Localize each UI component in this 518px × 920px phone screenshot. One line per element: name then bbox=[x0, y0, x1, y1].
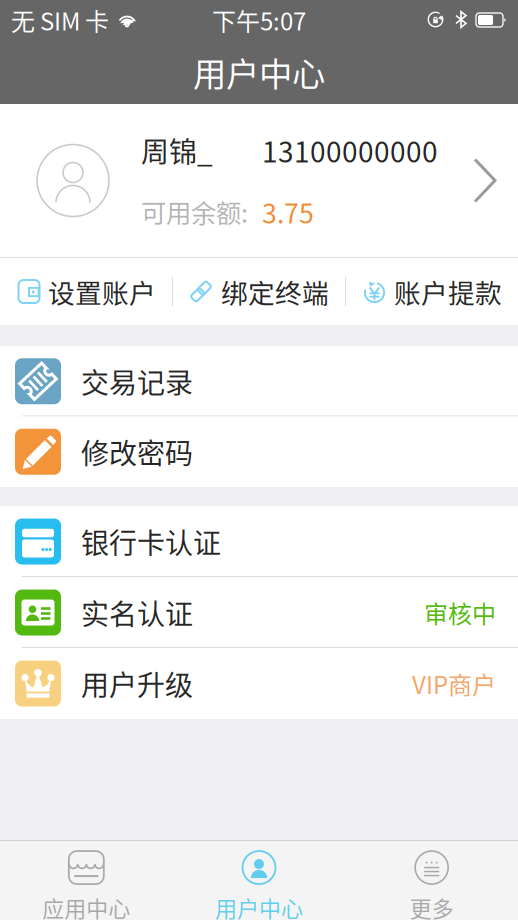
button[interactable]: 账户提款 bbox=[346, 258, 518, 325]
staticText: 设置账户 bbox=[48, 272, 156, 311]
staticText: 实名认证 bbox=[81, 592, 193, 633]
staticText: 交易记录 bbox=[81, 361, 193, 401]
staticText: 用户中心 bbox=[215, 892, 303, 920]
staticText: 无 SIM 卡 bbox=[11, 3, 109, 37]
button[interactable]: 用户中心 bbox=[173, 841, 345, 920]
staticText: 银行卡认证 bbox=[81, 521, 221, 562]
staticText: 修改密码 bbox=[81, 431, 193, 472]
button[interactable]: 绑定终端 bbox=[173, 258, 345, 325]
button[interactable]: 交易记录 bbox=[0, 346, 518, 416]
button[interactable]: 周锦_ bbox=[0, 104, 518, 257]
button[interactable]: 实名认证 bbox=[0, 577, 518, 648]
staticText: 3.75 bbox=[262, 192, 314, 231]
staticText: 用户中心 bbox=[193, 48, 325, 96]
staticText: 用户升级 bbox=[81, 663, 193, 704]
staticText: 可用余额: bbox=[141, 193, 248, 230]
staticText: 下午5:07 bbox=[212, 3, 306, 37]
button[interactable]: 用户升级 bbox=[0, 648, 518, 719]
staticText: 审核中 bbox=[424, 595, 496, 630]
button[interactable]: 设置账户 bbox=[0, 258, 172, 325]
staticText: 绑定终端 bbox=[221, 272, 329, 311]
staticText: 应用中心 bbox=[42, 892, 130, 920]
button[interactable]: 银行卡认证 bbox=[0, 506, 518, 577]
staticText: 账户提款 bbox=[394, 272, 502, 311]
staticText: 更多 bbox=[410, 892, 454, 920]
staticText: 周锦_ bbox=[141, 130, 213, 170]
staticText: VIP商户 bbox=[412, 666, 496, 701]
button[interactable]: 应用中心 bbox=[0, 841, 173, 920]
button[interactable]: 更多 bbox=[345, 841, 518, 920]
staticText: 13100000000 bbox=[262, 130, 438, 170]
button[interactable]: 修改密码 bbox=[0, 416, 518, 487]
